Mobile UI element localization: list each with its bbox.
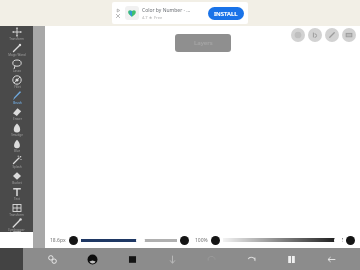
staticText: Eyedropper: [8, 228, 25, 232]
staticText: Free: [154, 15, 163, 20]
button[interactable]: Increase size: [180, 236, 189, 245]
button[interactable]: Redo: [240, 248, 262, 270]
button[interactable]: Pages: [280, 248, 302, 270]
button[interactable]: Eraser: [0, 106, 33, 122]
staticText: Transform: [9, 213, 24, 217]
staticText: Lasso: [13, 69, 21, 73]
staticText: Bucket: [12, 181, 22, 185]
button[interactable]: [223, 235, 343, 245]
button[interactable]: Smudge: [0, 122, 33, 138]
button[interactable]: Brush: [0, 90, 33, 106]
staticText: 18.6px: [50, 237, 66, 244]
staticText: INSTALL: [214, 10, 238, 18]
button[interactable]: Layers: [41, 248, 63, 270]
button[interactable]: Download: [161, 248, 183, 270]
button[interactable]: Transform: [0, 202, 33, 218]
button[interactable]: Text: [0, 186, 33, 202]
button[interactable]: Splash: [0, 154, 33, 170]
staticText: Magic Wand: [8, 53, 26, 57]
button[interactable]: Palette: [342, 28, 356, 42]
button[interactable]: Fillet: [0, 74, 33, 90]
staticText: 100%: [195, 237, 208, 244]
staticText: Eraser: [13, 117, 22, 121]
staticText: Splash: [12, 165, 22, 169]
button[interactable]: Decrease opacity: [211, 236, 220, 245]
staticText: Color by Number · …: [142, 7, 191, 14]
staticText: Smudge: [11, 133, 23, 137]
button[interactable]: Color by Number · …: [112, 2, 248, 24]
button[interactable]: Brush settings: [308, 28, 322, 42]
staticText: Brush: [13, 101, 22, 105]
button[interactable]: Color swatch: [121, 248, 143, 270]
button[interactable]: Magic Wand: [0, 42, 33, 58]
button[interactable]: [81, 235, 177, 245]
button[interactable]: Edit: [325, 28, 339, 42]
button[interactable]: Layers: [175, 34, 231, 52]
button[interactable]: Decrease size: [69, 236, 78, 245]
button[interactable]: Bucket: [0, 170, 33, 186]
button[interactable]: Blur: [0, 138, 33, 154]
button[interactable]: Undo history: [291, 28, 305, 42]
button[interactable]: Transform: [0, 26, 33, 42]
staticText: 4.7 ★: [142, 15, 153, 20]
button[interactable]: Color picker: [81, 248, 103, 270]
button[interactable]: Lasso: [0, 58, 33, 74]
staticText: Text: [14, 197, 20, 201]
button[interactable]: Back: [320, 248, 342, 270]
button[interactable]: Eyedropper: [0, 218, 33, 232]
button[interactable]: INSTALL: [208, 7, 244, 20]
staticText: Layers: [194, 39, 213, 47]
staticText: Fillet: [14, 85, 21, 89]
staticText: Blur: [14, 149, 20, 153]
staticText: Transform: [9, 37, 24, 41]
button[interactable]: Increase opacity: [346, 236, 355, 245]
